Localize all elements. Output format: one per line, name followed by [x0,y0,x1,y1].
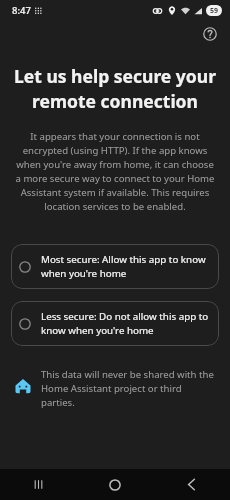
button[interactable]: Less secure: Do not allow this app to kn… [11,301,219,346]
staticText: Let us help secure your remote connectio… [14,64,216,113]
staticText: It appears that your connection is not e… [13,130,217,213]
button[interactable]: Back [153,469,230,500]
staticText: Most secure: Allow this app to know when… [41,253,209,280]
button[interactable]: Most secure: Allow this app to know when… [11,244,219,289]
button[interactable]: Home [76,469,153,500]
staticText: Less secure: Do not allow this app to kn… [41,310,209,337]
staticText: This data will never be shared with the … [41,368,214,409]
staticText: 59 [210,6,219,16]
button[interactable]: Recents [0,469,76,500]
button[interactable]: Help [198,22,222,46]
staticText: 8:47 [12,4,31,17]
